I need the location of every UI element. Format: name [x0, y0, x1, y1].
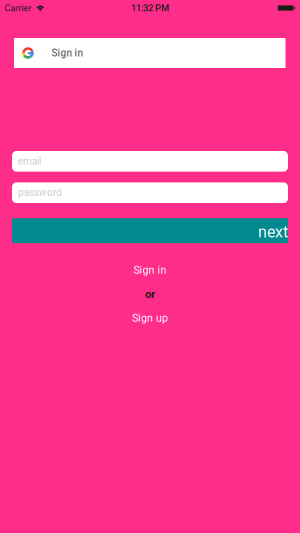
staticText: Sign in	[133, 264, 166, 276]
staticText: or	[145, 288, 155, 301]
staticText: next	[258, 223, 288, 241]
button[interactable]: Sign up	[0, 312, 300, 324]
button[interactable]: Sign in	[0, 264, 300, 276]
staticText: Sign up	[132, 312, 168, 324]
staticText: email	[18, 155, 41, 167]
staticText: Sign in	[51, 47, 83, 59]
staticText: Carrier	[4, 2, 31, 13]
staticText: password	[18, 187, 62, 198]
staticText: 11:32 PM	[131, 2, 169, 13]
button[interactable]: Sign in	[14, 38, 285, 68]
button[interactable]: next	[12, 218, 288, 243]
